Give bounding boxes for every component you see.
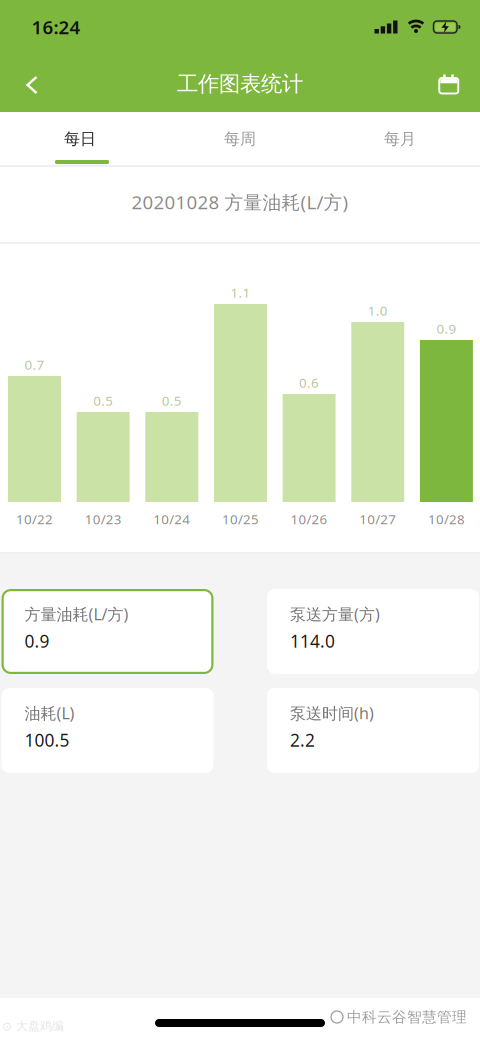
staticText: 100.5 <box>24 728 69 751</box>
staticText: 0.5 <box>93 392 113 409</box>
staticText: 114.0 <box>290 629 335 652</box>
staticText: 10/26 <box>291 510 328 528</box>
staticText: 10/23 <box>85 510 122 528</box>
staticText: 每周 <box>224 129 256 149</box>
button[interactable]: 油耗(L) <box>1 688 213 773</box>
staticText: 1.0 <box>368 302 388 319</box>
button[interactable]: 每月 <box>320 112 480 166</box>
staticText: ⊙ 大盘鸡编 <box>2 1019 64 1033</box>
button[interactable]: 方量油耗(L/方) <box>1 589 213 674</box>
staticText: 0.6 <box>299 374 319 391</box>
staticText: 0.9 <box>24 629 49 652</box>
button[interactable]: 每日 <box>0 112 160 166</box>
staticText: 0.7 <box>24 356 44 373</box>
staticText: 每月 <box>384 129 416 149</box>
staticText: 泵送时间(h) <box>290 702 374 724</box>
button[interactable]: Back <box>10 63 54 107</box>
staticText: 油耗(L) <box>24 702 74 724</box>
staticText: 0.5 <box>162 392 182 409</box>
button[interactable]: 泵送方量(方) <box>267 589 479 674</box>
staticText: 每日 <box>64 129 96 149</box>
staticText: 方量油耗(L/方) <box>24 603 128 625</box>
staticText: 10/28 <box>428 510 465 528</box>
staticText: 20201028 方量油耗(L/方) <box>131 190 348 214</box>
button[interactable]: 选择日期 <box>427 62 471 106</box>
staticText: 10/24 <box>153 510 190 528</box>
staticText: 2.2 <box>290 728 315 751</box>
button[interactable]: 每周 <box>160 112 320 166</box>
staticText: 泵送方量(方) <box>290 603 380 625</box>
staticText: 10/22 <box>16 510 53 528</box>
staticText: 16:24 <box>31 15 80 39</box>
staticText: 工作图表统计 <box>177 71 303 97</box>
button[interactable]: 泵送时间(h) <box>267 688 479 773</box>
staticText: 中科云谷智慧管理 <box>347 1008 467 1026</box>
staticText: 1.1 <box>230 284 250 301</box>
staticText: 10/27 <box>359 510 396 528</box>
staticText: 0.9 <box>436 320 456 337</box>
staticText: 10/25 <box>222 510 259 528</box>
